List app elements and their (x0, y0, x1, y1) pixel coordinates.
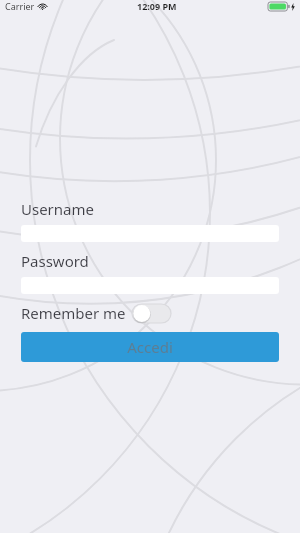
staticText: 12:09 PM (137, 0, 177, 12)
other: Battery full, charging (268, 2, 290, 11)
staticText: Remember me (21, 303, 126, 323)
staticText: Password (21, 251, 89, 271)
other: Wi-Fi (38, 2, 47, 10)
staticText: Accedi (127, 337, 173, 357)
staticText: Carrier (5, 0, 35, 12)
button[interactable]: Accedi (21, 332, 279, 362)
staticText: Username (21, 199, 94, 219)
button[interactable]: Remember me toggle, off (132, 304, 171, 323)
